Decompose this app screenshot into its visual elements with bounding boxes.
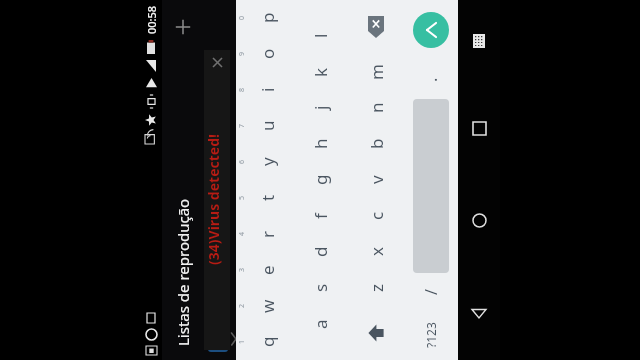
staticText: e: [256, 265, 279, 275]
button[interactable]: b: [348, 126, 404, 162]
staticText: b: [365, 138, 388, 149]
button[interactable]: 4: [236, 216, 292, 252]
button[interactable]: n: [348, 90, 404, 126]
button[interactable]: 7: [236, 108, 292, 144]
button[interactable]: a: [292, 306, 348, 342]
button[interactable]: g: [292, 162, 348, 198]
staticText: r: [256, 230, 279, 238]
button[interactable]: Fechar anúncio: [208, 54, 226, 72]
staticText: u: [256, 120, 279, 131]
staticText: /: [420, 289, 442, 295]
staticText: (34)Virus detected!: [204, 134, 223, 265]
button[interactable]: IPTV: [208, 326, 228, 352]
staticText: Listas de reprodução: [173, 198, 193, 346]
staticText: c: [365, 211, 388, 220]
button[interactable]: x: [348, 234, 404, 270]
button[interactable]: ?123: [404, 311, 458, 360]
staticText: m: [365, 64, 388, 80]
button[interactable]: v: [348, 162, 404, 198]
button[interactable]: l: [292, 18, 348, 54]
button[interactable]: 9: [236, 36, 292, 72]
button[interactable]: j: [292, 90, 348, 126]
staticText: q: [256, 336, 279, 347]
button[interactable]: Teclado: [458, 0, 500, 83]
button[interactable]: Adicionar lista: [166, 10, 200, 44]
staticText: 8: [237, 87, 247, 92]
staticText: .: [420, 77, 442, 82]
button[interactable]: Shift: [348, 306, 404, 360]
button[interactable]: 6: [236, 144, 292, 180]
staticText: x: [365, 247, 388, 256]
staticText: g: [309, 174, 332, 185]
staticText: v: [365, 175, 388, 184]
button[interactable]: Início: [458, 175, 500, 267]
button[interactable]: 0: [236, 0, 292, 36]
staticText: t: [256, 194, 279, 201]
button[interactable]: c: [348, 198, 404, 234]
button[interactable]: s: [292, 270, 348, 306]
button[interactable]: .: [404, 61, 458, 99]
staticText: 9: [237, 51, 247, 56]
button[interactable]: d: [292, 234, 348, 270]
staticText: 1: [237, 339, 247, 344]
button[interactable]: m: [348, 54, 404, 90]
button[interactable]: /: [404, 273, 458, 311]
staticText: l: [309, 33, 332, 38]
button[interactable]: z: [348, 270, 404, 306]
staticText: 2: [237, 303, 247, 308]
staticText: 5: [237, 195, 247, 200]
staticText: j: [309, 105, 332, 110]
staticText: i: [256, 87, 279, 92]
staticText: f: [309, 213, 332, 219]
button[interactable]: f: [292, 198, 348, 234]
button[interactable]: 1: [236, 324, 292, 360]
staticText: z: [365, 284, 388, 292]
staticText: 7: [237, 123, 247, 128]
button[interactable]: 5: [236, 180, 292, 216]
staticText: o: [256, 48, 279, 59]
button[interactable]: Enter: [404, 0, 458, 61]
button[interactable]: 3: [236, 252, 292, 288]
staticText: 3: [237, 267, 247, 272]
button[interactable]: Voltar: [458, 267, 500, 360]
staticText: 0: [237, 15, 247, 20]
staticText: w: [256, 299, 279, 313]
staticText: s: [309, 283, 332, 292]
staticText: h: [309, 138, 332, 149]
staticText: d: [309, 246, 332, 257]
staticText: n: [365, 102, 388, 113]
button[interactable]: 2: [236, 288, 292, 324]
button[interactable]: Recentes: [458, 83, 500, 175]
staticText: p: [256, 12, 279, 23]
staticText: ?123: [423, 322, 439, 348]
staticText: 4: [237, 231, 247, 236]
button[interactable]: 8: [236, 72, 292, 108]
staticText: y: [256, 157, 279, 166]
button[interactable]: Backspace: [348, 0, 404, 54]
button[interactable]: h: [292, 126, 348, 162]
staticText: a: [309, 319, 332, 329]
button[interactable]: (34)Virus detected!: [204, 50, 230, 350]
button[interactable]: k: [292, 54, 348, 90]
staticText: k: [309, 67, 332, 77]
staticText: 00:58: [144, 5, 159, 34]
staticText: 6: [237, 159, 247, 164]
